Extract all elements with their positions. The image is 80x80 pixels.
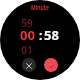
button[interactable]: Cancel	[22, 58, 36, 72]
button[interactable]: Minutes	[15, 16, 39, 58]
button[interactable]: Confirm	[44, 58, 58, 72]
staticText: Minute	[31, 2, 49, 14]
staticText: :	[39, 27, 43, 41]
staticText: 58	[44, 26, 59, 40]
button[interactable]: Seconds	[43, 26, 59, 40]
button[interactable]: Minute	[20, 3, 60, 13]
staticText: 01	[21, 43, 33, 54]
staticText: 00	[20, 26, 35, 40]
staticText: 59	[21, 16, 33, 27]
